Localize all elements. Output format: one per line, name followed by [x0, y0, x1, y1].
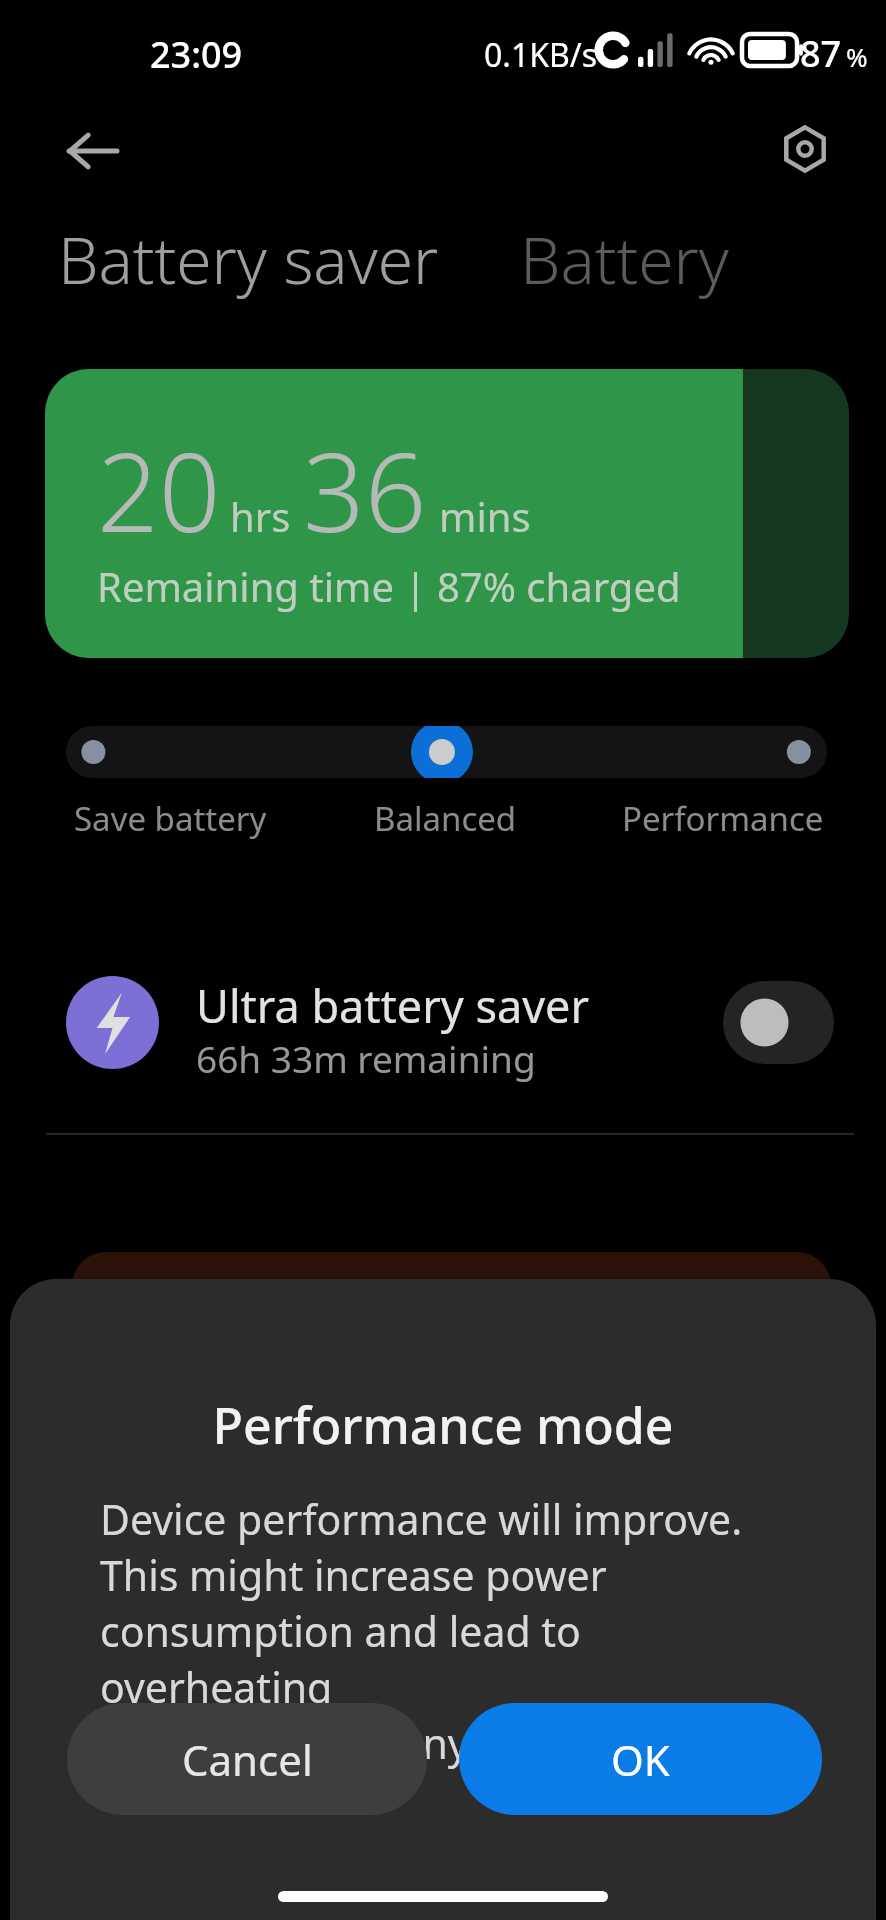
- staticText: 36: [303, 417, 427, 564]
- button[interactable]: OK: [459, 1703, 822, 1815]
- staticText: Remaining time | 87% charged: [97, 559, 681, 613]
- button[interactable]: Back: [50, 108, 136, 194]
- button[interactable]: 20: [45, 369, 849, 658]
- staticText: Balanced: [374, 796, 517, 841]
- button[interactable]: Cancel: [67, 1703, 427, 1815]
- staticText: Ultra battery saver: [196, 975, 590, 1036]
- staticText: Performance: [622, 796, 824, 841]
- staticText: mins: [439, 489, 531, 543]
- staticText: 0.1KB/s: [484, 33, 598, 77]
- staticText: %: [846, 39, 868, 74]
- staticText: Cancel: [182, 1731, 313, 1788]
- staticText: Save battery: [74, 796, 267, 841]
- button[interactable]: Performance mode slider: [66, 726, 827, 778]
- staticText: Battery: [520, 216, 729, 303]
- button[interactable]: Fix 3 battery usage issues: [72, 1252, 831, 1382]
- staticText: 20: [97, 417, 221, 564]
- staticText: Performance mode: [10, 1391, 876, 1459]
- staticText: Battery saver: [58, 216, 439, 303]
- button[interactable]: Ultra battery saver toggle: [723, 981, 834, 1064]
- staticText: 66h 33m remaining: [196, 1033, 536, 1083]
- button[interactable]: Ultra battery saver: [40, 930, 850, 1115]
- button[interactable]: Settings: [762, 106, 848, 192]
- staticText: hrs: [230, 489, 291, 543]
- staticText: 23:09: [150, 30, 243, 79]
- staticText: Device performance will improve. This mi…: [100, 1491, 800, 1771]
- staticText: OK: [611, 1731, 670, 1788]
- staticText: 87: [800, 29, 842, 78]
